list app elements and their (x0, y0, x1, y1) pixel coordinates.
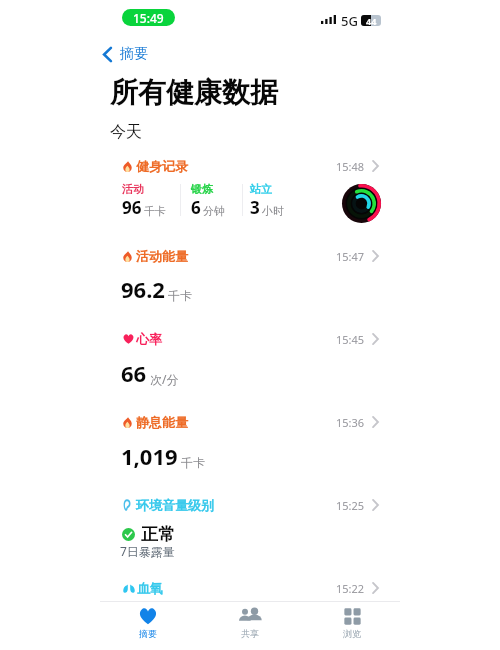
staticText: 小时 (262, 204, 284, 218)
staticText: 96 (122, 196, 142, 219)
staticText: 活动能量 (136, 248, 188, 264)
staticText: 15:36 (336, 415, 365, 430)
staticText: 44 (366, 15, 377, 26)
button[interactable]: 环境音量级别 (123, 497, 381, 513)
staticText: 活动 (122, 182, 144, 196)
button[interactable]: 血氧 (123, 580, 381, 596)
staticText: 锻炼 (191, 182, 213, 196)
staticText: 千卡 (144, 204, 166, 218)
button[interactable]: 共享 (199, 601, 301, 645)
staticText: 正常 (141, 524, 175, 545)
staticText: 摘要 (120, 45, 148, 63)
button[interactable]: 活动能量 (123, 248, 381, 264)
staticText: 96.2 (121, 274, 165, 304)
staticText: 千卡 (181, 455, 205, 470)
staticText: 所有健康数据 (110, 75, 278, 110)
staticText: 健身记录 (136, 158, 188, 174)
staticText: 站立 (250, 182, 272, 196)
button[interactable]: 静息能量 (123, 414, 381, 430)
staticText: 7日暴露量 (120, 543, 175, 559)
button[interactable]: 健身记录 (123, 158, 381, 174)
staticText: 血氧 (137, 580, 163, 596)
button[interactable]: 摘要 (95, 44, 148, 64)
staticText: 心率 (136, 331, 162, 347)
staticText: 千卡 (168, 288, 192, 303)
staticText: 1,019 (121, 441, 178, 471)
button[interactable]: 浏览 (301, 601, 403, 645)
staticText: 66 (121, 358, 147, 388)
staticText: 15:22 (336, 581, 365, 596)
staticText: 共享 (241, 628, 259, 639)
staticText: 5G (341, 12, 358, 30)
staticText: 15:48 (336, 159, 365, 174)
staticText: 次/分 (150, 371, 179, 387)
staticText: 15:49 (133, 10, 164, 26)
staticText: 15:45 (336, 332, 365, 347)
staticText: 环境音量级别 (136, 497, 214, 513)
staticText: 浏览 (343, 628, 361, 639)
staticText: 15:25 (336, 498, 365, 513)
staticText: 15:47 (336, 249, 365, 264)
button[interactable]: 摘要 (97, 601, 199, 645)
staticText: 摘要 (139, 628, 157, 639)
staticText: 分钟 (203, 204, 225, 218)
staticText: 今天 (110, 122, 142, 142)
staticText: 6 (191, 196, 201, 219)
staticText: 3 (250, 196, 260, 219)
staticText: 静息能量 (136, 414, 188, 430)
button[interactable]: 心率 (123, 331, 381, 347)
